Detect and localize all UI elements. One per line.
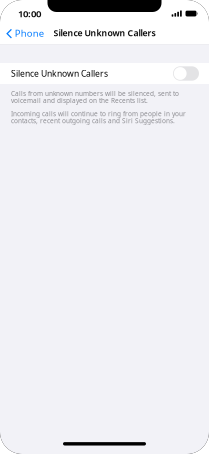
button[interactable]: Silence Unknown Callers bbox=[0, 63, 209, 84]
staticText: Phone bbox=[15, 27, 44, 39]
staticText: Silence Unknown Callers bbox=[53, 27, 155, 39]
staticText: 10:00 bbox=[18, 7, 41, 20]
staticText: Incoming calls will continue to ring fro… bbox=[11, 109, 186, 125]
button[interactable]: Phone bbox=[0, 23, 48, 43]
staticText: Silence Unknown Callers bbox=[11, 68, 108, 79]
staticText: Calls from unknown numbers will be silen… bbox=[11, 89, 179, 105]
